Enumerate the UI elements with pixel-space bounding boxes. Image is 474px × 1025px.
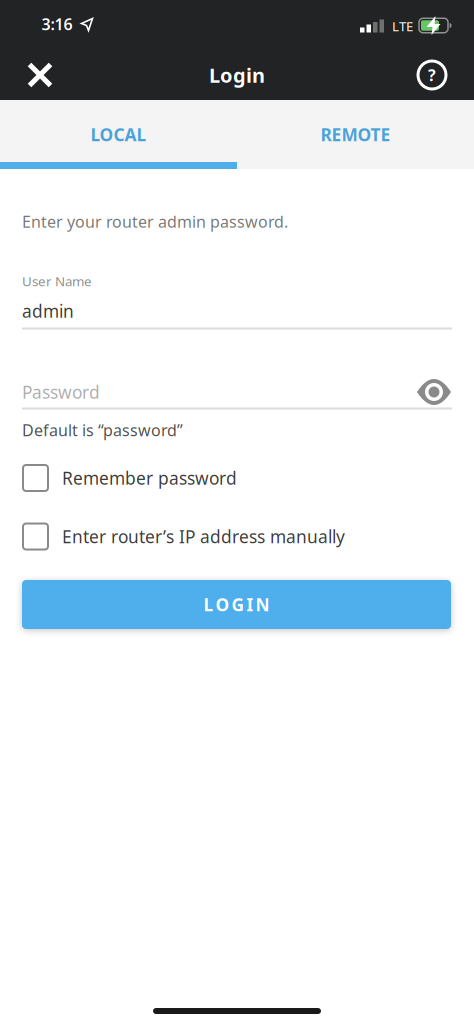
staticText: Password [22, 380, 100, 403]
staticText: User Name [22, 272, 92, 290]
staticText: LOCAL [90, 123, 146, 146]
button[interactable]: L O G I N [22, 580, 451, 629]
staticText: Enter router’s IP address manually [62, 525, 345, 548]
button[interactable]: Help [410, 53, 454, 97]
button[interactable]: Show password [412, 372, 456, 412]
staticText: 3:16 [41, 13, 72, 35]
button[interactable]: Remember password [23, 463, 452, 493]
staticText: Remember password [62, 466, 237, 489]
staticText: L O G I N [203, 593, 269, 616]
button[interactable]: REMOTE [237, 100, 474, 169]
staticText: ? [428, 64, 436, 86]
staticText: REMOTE [320, 123, 390, 146]
button[interactable]: Close [18, 53, 62, 97]
button[interactable]: LOCAL [0, 100, 237, 169]
staticText: Enter your router admin password. [22, 211, 288, 232]
button[interactable]: Enter router’s IP address manually [23, 521, 452, 551]
staticText: admin [22, 299, 74, 322]
staticText: Default is “password” [22, 419, 183, 441]
staticText: LTE [392, 17, 413, 35]
staticText: Login [209, 62, 265, 88]
